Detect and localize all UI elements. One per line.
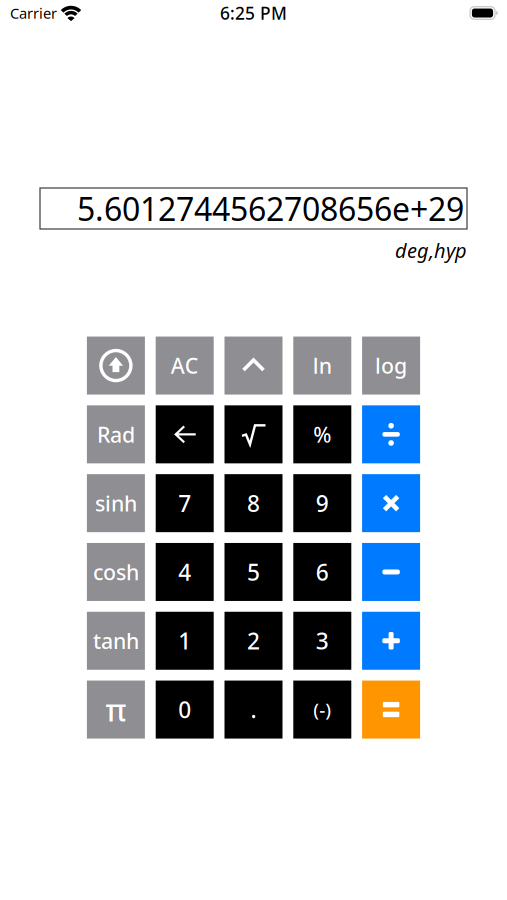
staticText: . xyxy=(250,694,256,725)
button[interactable]: Equals xyxy=(362,681,420,739)
staticText: 8 xyxy=(247,488,260,518)
staticText: ln xyxy=(313,351,332,380)
button[interactable]: . xyxy=(224,681,282,739)
button[interactable]: (-) xyxy=(293,681,351,739)
button[interactable]: 6 xyxy=(293,543,351,601)
button[interactable]: Add xyxy=(362,612,420,670)
staticText: 3 xyxy=(316,626,329,656)
button[interactable]: tanh xyxy=(87,612,145,670)
staticText: 6 xyxy=(316,557,329,587)
staticText: deg,hyp xyxy=(395,237,467,264)
button[interactable]: Square root xyxy=(224,405,282,463)
button[interactable]: Shift xyxy=(87,337,145,395)
staticText: 6:25 PM xyxy=(220,1,287,24)
button[interactable]: 3 xyxy=(293,612,351,670)
staticText: 5 xyxy=(247,557,260,587)
button[interactable]: Power xyxy=(224,337,282,395)
button[interactable]: 9 xyxy=(293,474,351,532)
staticText: 4 xyxy=(178,557,191,587)
staticText: sinh xyxy=(95,489,137,517)
staticText: AC xyxy=(171,351,199,380)
button[interactable]: Backspace xyxy=(156,405,214,463)
button[interactable]: cosh xyxy=(87,543,145,601)
button[interactable]: sinh xyxy=(87,474,145,532)
button[interactable]: ln xyxy=(293,337,351,395)
button[interactable]: 7 xyxy=(156,474,214,532)
button[interactable]: Subtract xyxy=(362,543,420,601)
staticText: Carrier xyxy=(10,3,57,23)
button[interactable]: % xyxy=(293,405,351,463)
button[interactable]: Divide xyxy=(362,405,420,463)
staticText: Rad xyxy=(97,420,135,448)
button[interactable]: AC xyxy=(156,337,214,395)
button[interactable]: 8 xyxy=(224,474,282,532)
button[interactable]: 4 xyxy=(156,543,214,601)
staticText: log xyxy=(375,351,407,380)
staticText: tanh xyxy=(93,627,139,655)
staticText: 0 xyxy=(178,694,191,725)
staticText: π xyxy=(105,689,126,730)
staticText: % xyxy=(313,420,331,448)
button[interactable]: 2 xyxy=(224,612,282,670)
staticText: 2 xyxy=(247,626,260,656)
staticText: 7 xyxy=(178,488,191,518)
staticText: 1 xyxy=(178,626,191,656)
button[interactable]: π xyxy=(87,681,145,739)
staticText: cosh xyxy=(93,558,139,586)
staticText: 5.6012744562708656e+29 xyxy=(77,187,464,230)
button[interactable]: log xyxy=(362,337,420,395)
button[interactable]: Multiply xyxy=(362,474,420,532)
staticText: (-) xyxy=(313,697,331,722)
button[interactable]: 0 xyxy=(156,681,214,739)
button[interactable]: Rad xyxy=(87,405,145,463)
button[interactable]: 5 xyxy=(224,543,282,601)
staticText: 9 xyxy=(316,488,329,518)
button[interactable]: 1 xyxy=(156,612,214,670)
